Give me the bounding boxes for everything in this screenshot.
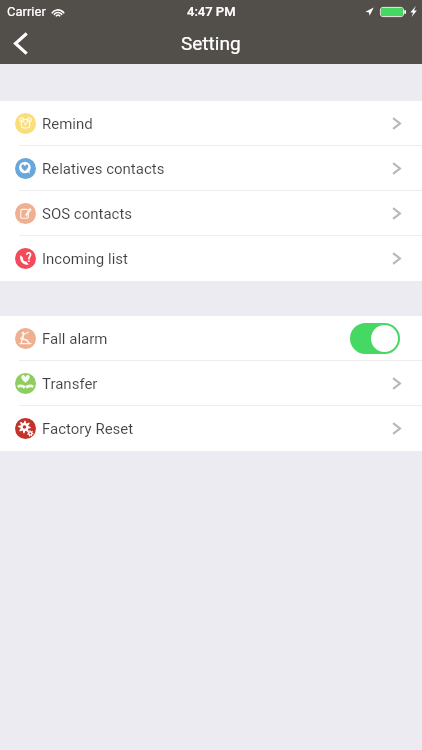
button[interactable]: Fall alarm toggle bbox=[350, 323, 400, 354]
staticText: Remind bbox=[42, 115, 93, 133]
staticText: Transfer bbox=[42, 375, 98, 393]
staticText: SOS contacts bbox=[42, 205, 133, 223]
staticText: Incoming list bbox=[42, 250, 128, 268]
button[interactable]: Factory Reset bbox=[0, 406, 422, 451]
staticText: Carrier bbox=[7, 4, 46, 19]
button[interactable]: Remind bbox=[0, 101, 422, 146]
staticText: Factory Reset bbox=[42, 420, 134, 438]
button[interactable]: Transfer bbox=[0, 361, 422, 406]
staticText: Setting bbox=[181, 32, 241, 54]
button[interactable]: Fall alarm bbox=[0, 316, 422, 361]
button[interactable]: SOS contacts bbox=[0, 191, 422, 236]
button[interactable]: Incoming list bbox=[0, 236, 422, 281]
staticText: 4:47 PM bbox=[187, 4, 236, 19]
staticText: Fall alarm bbox=[42, 330, 108, 348]
staticText: Relatives contacts bbox=[42, 160, 165, 178]
button[interactable]: Back bbox=[0, 23, 40, 63]
button[interactable]: Relatives contacts bbox=[0, 146, 422, 191]
